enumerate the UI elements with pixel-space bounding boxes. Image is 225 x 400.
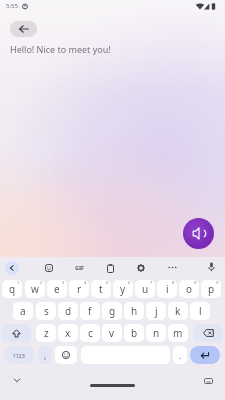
staticText: 5:55 (6, 2, 18, 10)
button[interactable] (183, 218, 214, 249)
button[interactable]: u (135, 280, 155, 298)
staticText: ?123 (13, 352, 25, 359)
button[interactable] (208, 262, 215, 272)
button[interactable]: o (179, 280, 199, 298)
staticText: 3 (62, 280, 65, 285)
staticText: g (109, 304, 116, 318)
button[interactable]: i (157, 280, 177, 298)
button[interactable] (90, 384, 135, 387)
staticText: , (44, 350, 47, 361)
staticText: a (20, 304, 26, 318)
staticText: d (65, 304, 72, 318)
button[interactable]: b (124, 324, 144, 342)
staticText: x (65, 326, 71, 340)
staticText: 0 (216, 280, 219, 285)
staticText: y (120, 282, 126, 296)
staticText: i (166, 282, 169, 296)
button[interactable]: m (168, 324, 188, 342)
button[interactable]: y (113, 280, 133, 298)
staticText: 9 (194, 280, 197, 285)
button[interactable]: l (190, 302, 210, 320)
button[interactable]: n (146, 324, 166, 342)
button[interactable] (190, 346, 220, 364)
staticText: e (54, 282, 60, 296)
button[interactable]: d (58, 302, 78, 320)
staticText: w (31, 282, 39, 296)
staticText: h (131, 304, 138, 318)
button[interactable]: GIF (75, 264, 85, 271)
staticText: l (199, 304, 202, 318)
button[interactable]: w (25, 280, 45, 298)
staticText: 6 (128, 280, 131, 285)
staticText: t (99, 282, 103, 296)
staticText: b (131, 326, 138, 340)
staticText: v (109, 326, 115, 340)
button[interactable]: x (58, 324, 78, 342)
staticText: c (88, 326, 93, 340)
button[interactable]: . (173, 346, 187, 364)
button[interactable] (137, 264, 145, 272)
button[interactable] (204, 378, 213, 384)
button[interactable]: s (36, 302, 56, 320)
staticText: o (186, 282, 193, 296)
button[interactable]: a (13, 302, 33, 320)
staticText: 2 (40, 280, 43, 285)
button[interactable] (194, 324, 223, 342)
button[interactable]: h (124, 302, 144, 320)
button[interactable] (10, 21, 37, 37)
staticText: s (44, 304, 49, 318)
button[interactable]: q (2, 280, 22, 298)
button[interactable] (2, 324, 31, 342)
staticText: 8 (172, 280, 175, 285)
button[interactable]: r (69, 280, 89, 298)
staticText: q (9, 282, 16, 296)
button[interactable]: k (168, 302, 188, 320)
button[interactable] (5, 261, 19, 275)
button[interactable]: g (102, 302, 122, 320)
button[interactable] (168, 266, 177, 269)
button[interactable]: t (91, 280, 111, 298)
staticText: n (153, 326, 160, 340)
staticText: m (173, 326, 183, 340)
button[interactable] (55, 346, 77, 364)
staticText: Hello! Nice to meet you! (10, 43, 111, 55)
button[interactable]: z (36, 324, 56, 342)
staticText: f (88, 304, 92, 318)
button[interactable]: , (38, 346, 52, 364)
button[interactable] (107, 264, 114, 273)
staticText: . (179, 350, 182, 361)
staticText: k (175, 304, 181, 318)
staticText: r (77, 282, 82, 296)
staticText: u (142, 282, 149, 296)
button[interactable]: f (80, 302, 100, 320)
button[interactable]: ?123 (4, 346, 34, 364)
button[interactable]: c (80, 324, 100, 342)
button[interactable]: e (47, 280, 67, 298)
button[interactable]: j (146, 302, 166, 320)
button[interactable] (45, 264, 53, 272)
staticText: p (208, 282, 215, 296)
button[interactable]: v (102, 324, 122, 342)
staticText: 4 (84, 280, 87, 285)
staticText: 5 (106, 280, 109, 285)
staticText: j (155, 304, 158, 318)
staticText: 1 (17, 280, 20, 285)
staticText: z (44, 326, 49, 340)
button[interactable] (13, 378, 21, 383)
staticText: 7 (150, 280, 153, 285)
button[interactable]: p (201, 280, 221, 298)
